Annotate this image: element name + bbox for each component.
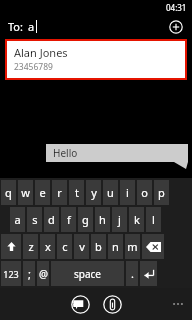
button[interactable]: s (27, 207, 42, 232)
staticText: n (112, 239, 119, 254)
button[interactable]: f (61, 207, 76, 232)
staticText: Hello (53, 146, 78, 160)
staticText: 23456789 (14, 61, 53, 73)
staticText: h (99, 212, 106, 227)
staticText: k (134, 212, 140, 227)
staticText: j (118, 212, 121, 227)
button[interactable]: q (1, 180, 16, 205)
button[interactable]: e (35, 180, 50, 205)
button[interactable]: b (91, 234, 106, 259)
staticText: o (141, 185, 148, 200)
staticText: @ (39, 267, 48, 281)
staticText: a (28, 19, 35, 34)
staticText: u (107, 185, 114, 200)
button[interactable]: u (103, 180, 118, 205)
button[interactable]: Hello (46, 144, 188, 162)
button[interactable]: p (154, 180, 169, 205)
button[interactable]: @ (37, 261, 49, 286)
button[interactable]: r (52, 180, 67, 205)
staticText: l (152, 212, 155, 227)
staticText: w (21, 185, 30, 200)
staticText: 04:31 (166, 2, 187, 13)
button[interactable]: z (23, 234, 38, 259)
staticText: p (158, 185, 165, 200)
staticText: z (28, 239, 34, 254)
staticText: x (45, 239, 51, 254)
button[interactable]: w (18, 180, 33, 205)
button[interactable]: . (126, 261, 138, 286)
button[interactable]: Send (67, 291, 93, 317)
button[interactable]: Attach (99, 291, 125, 317)
button[interactable]: y (86, 180, 101, 205)
staticText: a (14, 212, 21, 227)
button[interactable]: space (51, 261, 124, 286)
staticText: space (74, 267, 101, 281)
button[interactable] (140, 261, 157, 286)
button[interactable]: Alan Jones (7, 41, 185, 78)
staticText: q (5, 185, 12, 200)
button[interactable]: g (78, 207, 93, 232)
button[interactable]: More options (167, 293, 189, 315)
staticText: f (67, 212, 71, 227)
button[interactable]: c (57, 234, 72, 259)
button[interactable]: j (112, 207, 127, 232)
button[interactable] (142, 234, 164, 259)
staticText: Alan Jones (14, 45, 68, 60)
button[interactable]: k (129, 207, 144, 232)
staticText: s (32, 212, 38, 227)
button[interactable]: ; (23, 261, 35, 286)
staticText: e (39, 185, 46, 200)
button[interactable]: o (137, 180, 152, 205)
button[interactable]: x (40, 234, 55, 259)
staticText: m (127, 239, 138, 254)
button[interactable]: l (146, 207, 161, 232)
button[interactable]: i (120, 180, 135, 205)
button[interactable]: Add recipient (166, 17, 186, 37)
staticText: y (91, 185, 97, 200)
staticText: To: (8, 19, 23, 34)
staticText: t (75, 185, 79, 200)
button[interactable]: m (125, 234, 140, 259)
button[interactable] (1, 234, 21, 259)
staticText: d (48, 212, 55, 227)
button[interactable]: n (108, 234, 123, 259)
button[interactable]: a (10, 207, 25, 232)
staticText: c (62, 239, 68, 254)
staticText: r (57, 185, 62, 200)
staticText: b (95, 239, 102, 254)
staticText: i (126, 185, 129, 200)
staticText: . (131, 266, 134, 281)
staticText: 123 (3, 268, 19, 280)
button[interactable]: h (95, 207, 110, 232)
button[interactable]: 123 (1, 261, 21, 286)
button[interactable]: v (74, 234, 89, 259)
button[interactable]: d (44, 207, 59, 232)
staticText: v (79, 239, 85, 254)
staticText: ; (28, 266, 31, 281)
staticText: g (82, 212, 89, 227)
button[interactable]: t (69, 180, 84, 205)
